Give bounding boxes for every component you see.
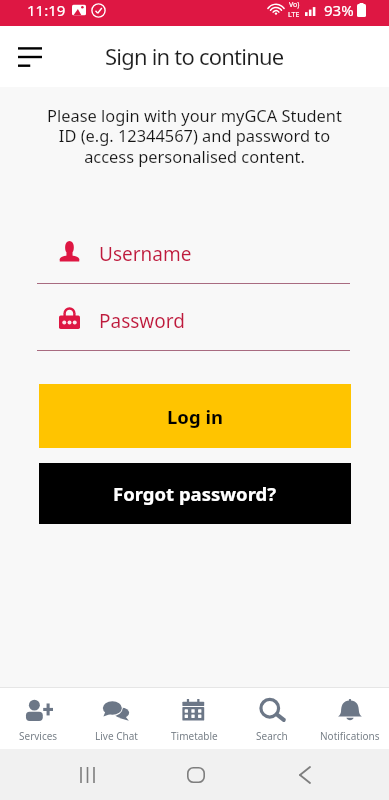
button[interactable]: Search	[233, 688, 311, 749]
button[interactable]: Home	[180, 759, 212, 791]
staticText: Forgot password?	[113, 481, 277, 506]
staticText: Sign in to continue	[105, 41, 284, 71]
staticText: Search	[256, 729, 288, 743]
staticText: 11:19	[27, 0, 66, 20]
button[interactable]: Recents	[71, 759, 103, 791]
button[interactable]: Timetable	[155, 688, 233, 749]
button[interactable]: Password	[37, 308, 350, 351]
button[interactable]: Username	[37, 241, 350, 284]
staticText: Timetable	[171, 729, 218, 743]
staticText: Services	[19, 729, 58, 743]
button[interactable]: Services	[0, 688, 77, 749]
staticText: Live Chat	[95, 729, 138, 743]
staticText: Please login with your myGCA Student ID …	[42, 104, 347, 168]
staticText: Log in	[167, 404, 223, 429]
staticText: Password	[99, 308, 185, 330]
button[interactable]: Log in	[39, 384, 351, 448]
button[interactable]: Forgot password?	[39, 463, 351, 524]
staticText: Notifications	[320, 729, 380, 743]
staticText: Username	[99, 241, 192, 263]
button[interactable]: Menu	[6, 33, 54, 81]
staticText: LTE	[288, 10, 300, 20]
staticText: 93%	[324, 0, 354, 20]
button[interactable]: Back	[289, 759, 321, 791]
button[interactable]: Live Chat	[77, 688, 155, 749]
staticText: Vo)	[289, 0, 300, 10]
button[interactable]: Notifications	[311, 688, 389, 749]
